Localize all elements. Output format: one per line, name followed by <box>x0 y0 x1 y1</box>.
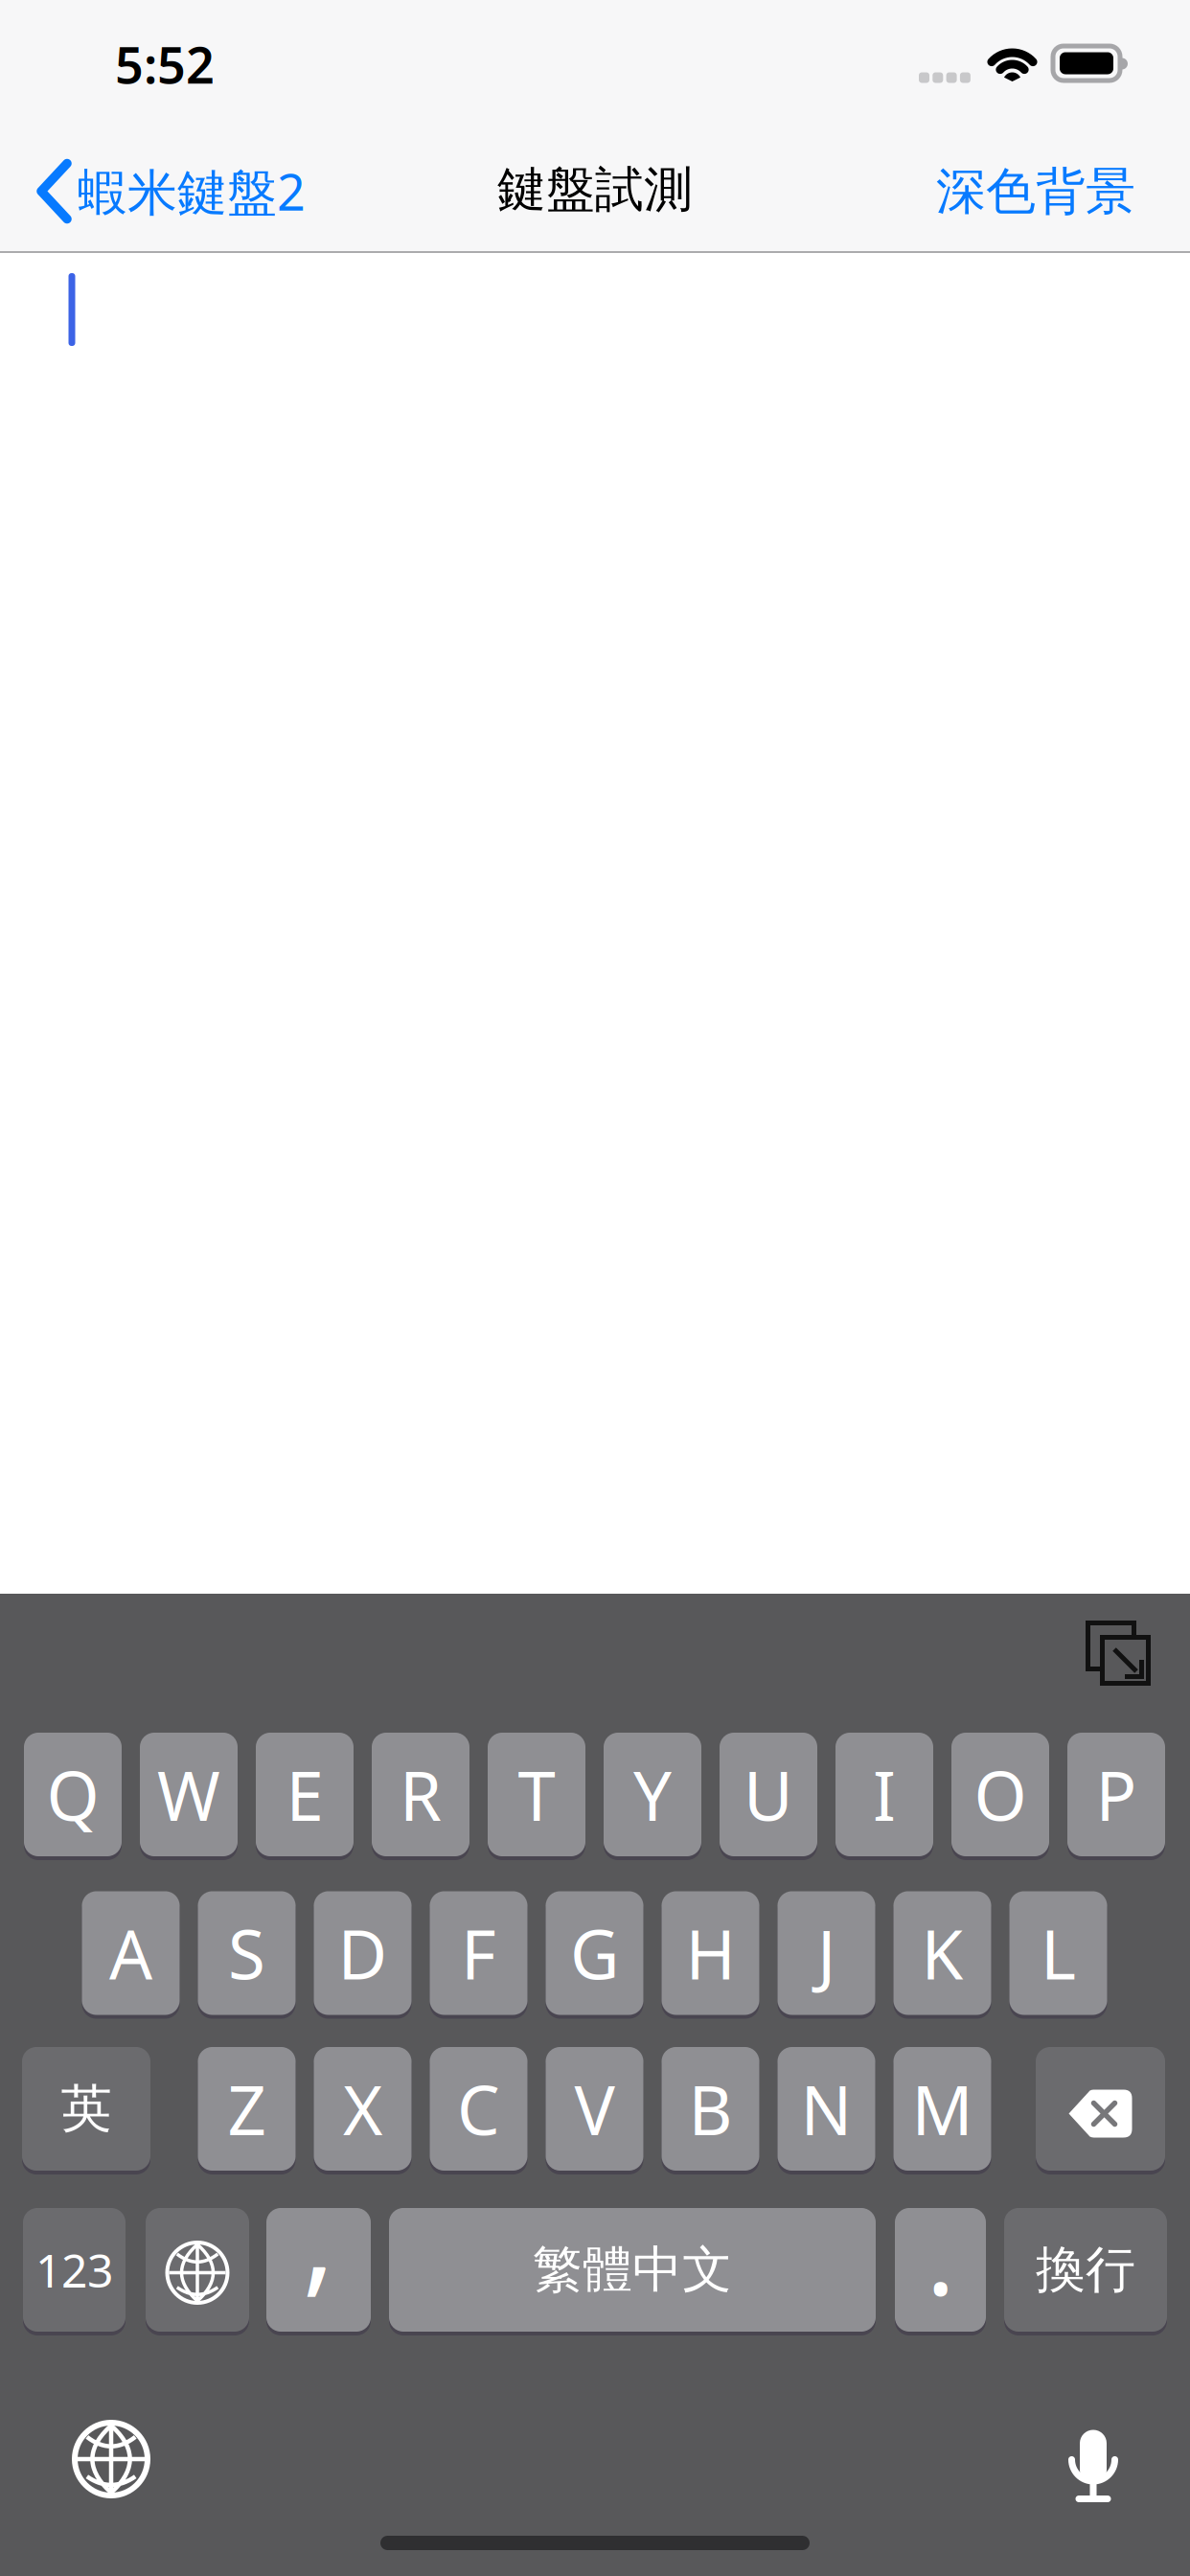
staticText: J <box>817 1908 835 1998</box>
staticText: 換行 <box>1036 2239 1135 2300</box>
button[interactable]: Dictation <box>1071 2429 1115 2503</box>
staticText: Y <box>633 1750 672 1839</box>
staticText: 繁體中文 <box>533 2239 732 2300</box>
staticText: . <box>926 2180 955 2325</box>
button[interactable]: Z <box>198 2047 296 2171</box>
staticText: 5:52 <box>115 31 215 97</box>
button[interactable]: M <box>893 2047 991 2171</box>
button[interactable]: F <box>430 1891 527 2015</box>
button[interactable]: P <box>1067 1733 1165 1856</box>
button[interactable]: Dismiss Keyboard <box>1086 1621 1151 1686</box>
staticText: F <box>461 1908 496 1998</box>
staticText: K <box>921 1908 963 1998</box>
button[interactable]: Y <box>604 1733 701 1856</box>
staticText: Q <box>46 1750 99 1839</box>
button[interactable]: X <box>314 2047 412 2171</box>
button[interactable]: N <box>778 2047 875 2171</box>
staticText: L <box>1041 1908 1076 1998</box>
button[interactable]: H <box>662 1891 759 2015</box>
button[interactable]: A <box>82 1891 180 2015</box>
staticText: W <box>157 1750 220 1839</box>
button[interactable]: 繁體中文 <box>389 2208 876 2332</box>
button[interactable]: V <box>546 2047 643 2171</box>
button[interactable]: I <box>835 1733 933 1856</box>
staticText: U <box>744 1750 793 1839</box>
button[interactable]: 深色背景 <box>936 161 1135 222</box>
staticText: V <box>574 2064 615 2154</box>
staticText: P <box>1096 1750 1137 1839</box>
button[interactable]: 換行 <box>1004 2208 1167 2332</box>
button[interactable]: Delete <box>1036 2047 1165 2171</box>
button[interactable]: T <box>488 1733 585 1856</box>
staticText: , <box>302 2154 335 2315</box>
staticText: Z <box>228 2064 266 2154</box>
button[interactable]: 英 <box>22 2047 150 2171</box>
staticText: C <box>457 2064 500 2154</box>
staticText: 鍵盤試測 <box>497 160 693 220</box>
button[interactable]: G <box>546 1891 643 2015</box>
staticText: 蝦米鍵盤2 <box>78 158 306 224</box>
button[interactable]: Next Keyboard <box>146 2208 249 2332</box>
staticText: 123 <box>35 2239 113 2300</box>
button[interactable]: J <box>778 1891 875 2015</box>
staticText: B <box>688 2064 732 2154</box>
staticText: D <box>338 1908 388 1998</box>
button[interactable]: , <box>266 2208 371 2332</box>
staticText: A <box>109 1908 152 1998</box>
button[interactable]: W <box>140 1733 238 1856</box>
staticText: S <box>228 1908 265 1998</box>
button[interactable]: K <box>893 1891 991 2015</box>
staticText: H <box>686 1908 735 1998</box>
staticText: O <box>974 1750 1027 1839</box>
button[interactable]: D <box>314 1891 412 2015</box>
staticText: E <box>286 1750 323 1839</box>
button[interactable]: E <box>256 1733 354 1856</box>
button[interactable]: C <box>430 2047 527 2171</box>
staticText: I <box>873 1750 896 1839</box>
button[interactable]: 123 <box>23 2208 126 2332</box>
button[interactable]: . <box>895 2208 986 2332</box>
button[interactable]: L <box>1009 1891 1107 2015</box>
staticText: 深色背景 <box>936 161 1135 222</box>
button[interactable]: 蝦米鍵盤2 <box>34 158 306 224</box>
button[interactable]: R <box>372 1733 469 1856</box>
button[interactable]: U <box>720 1733 817 1856</box>
staticText: G <box>570 1908 619 1998</box>
button[interactable]: Next Keyboard <box>75 2423 148 2495</box>
staticText: 英 <box>61 2077 112 2140</box>
staticText: R <box>400 1750 442 1839</box>
staticText: N <box>801 2064 852 2154</box>
button[interactable]: Q <box>24 1733 122 1856</box>
button[interactable]: O <box>951 1733 1049 1856</box>
staticText: M <box>912 2064 973 2154</box>
staticText: T <box>518 1750 555 1839</box>
button[interactable]: B <box>662 2047 759 2171</box>
staticText: X <box>343 2064 382 2154</box>
button[interactable]: S <box>198 1891 296 2015</box>
